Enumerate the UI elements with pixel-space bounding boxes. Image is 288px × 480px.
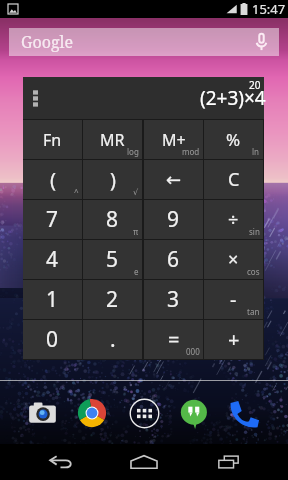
button[interactable]: ÷ bbox=[204, 200, 263, 239]
staticText: 000 bbox=[186, 346, 200, 357]
staticText: 20 bbox=[249, 78, 261, 92]
staticText: . bbox=[110, 325, 116, 354]
button[interactable]: Home bbox=[116, 444, 172, 480]
button[interactable]: Camera bbox=[21, 392, 63, 434]
staticText: MR bbox=[100, 129, 125, 151]
button[interactable]: = bbox=[144, 320, 203, 359]
button[interactable]: Phone bbox=[223, 392, 265, 434]
button[interactable]: 6 bbox=[144, 240, 203, 279]
button[interactable]: Fn bbox=[23, 120, 82, 159]
staticText: ln bbox=[252, 146, 260, 157]
staticText: 3 bbox=[167, 285, 180, 314]
button[interactable]: Hangouts bbox=[173, 392, 215, 434]
staticText: 4 bbox=[46, 245, 59, 274]
staticText: % bbox=[226, 128, 241, 151]
button[interactable]: Apps bbox=[123, 392, 165, 434]
button[interactable]: 7 bbox=[23, 200, 82, 239]
staticText: tan bbox=[247, 306, 260, 317]
button[interactable]: MR bbox=[83, 120, 142, 159]
staticText: Google bbox=[21, 31, 74, 53]
button[interactable]: . bbox=[83, 320, 142, 359]
staticText: log bbox=[127, 146, 139, 157]
button[interactable]: 9 bbox=[144, 200, 203, 239]
button[interactable]: 8 bbox=[83, 200, 142, 239]
button[interactable]: 2 bbox=[83, 280, 142, 319]
staticText: = bbox=[168, 326, 180, 353]
staticText: 5 bbox=[106, 245, 119, 274]
staticText: ) bbox=[110, 166, 116, 193]
staticText: √ bbox=[133, 188, 139, 197]
staticText: sin bbox=[249, 226, 260, 237]
button[interactable]: M+ bbox=[144, 120, 203, 159]
staticText: C bbox=[228, 167, 240, 192]
button[interactable]: ← bbox=[144, 160, 203, 199]
staticText: 1 bbox=[46, 285, 59, 314]
button[interactable]: Google bbox=[9, 28, 279, 56]
staticText: 15:47 bbox=[252, 0, 286, 18]
staticText: (2+3)×4 bbox=[200, 85, 266, 111]
staticText: ÷ bbox=[228, 207, 239, 232]
button[interactable]: 1 bbox=[23, 280, 82, 319]
staticText: mod bbox=[182, 146, 200, 157]
staticText: Fn bbox=[43, 129, 62, 151]
staticText: 9 bbox=[167, 205, 180, 234]
button[interactable]: 5 bbox=[83, 240, 142, 279]
staticText: ← bbox=[166, 169, 182, 190]
button[interactable]: × bbox=[204, 240, 263, 279]
staticText: M+ bbox=[162, 129, 186, 151]
staticText: ^ bbox=[74, 186, 79, 197]
staticText: × bbox=[228, 247, 239, 272]
staticText: ( bbox=[50, 166, 56, 193]
button[interactable]: ) bbox=[83, 160, 142, 199]
button[interactable]: % bbox=[204, 120, 263, 159]
staticText: - bbox=[230, 286, 237, 313]
staticText: 0 bbox=[46, 325, 59, 354]
button[interactable]: Back bbox=[32, 444, 88, 480]
staticText: e bbox=[134, 266, 139, 277]
staticText: 2 bbox=[106, 285, 119, 314]
staticText: cos bbox=[247, 266, 260, 277]
staticText: + bbox=[228, 326, 240, 353]
staticText: π bbox=[133, 226, 139, 237]
button[interactable]: + bbox=[204, 320, 263, 359]
button[interactable]: 0 bbox=[23, 320, 82, 359]
staticText: 8 bbox=[106, 205, 119, 234]
staticText: 7 bbox=[46, 205, 59, 234]
button[interactable]: - bbox=[204, 280, 263, 319]
button[interactable]: 4 bbox=[23, 240, 82, 279]
staticText: 6 bbox=[167, 245, 180, 274]
button[interactable]: Chrome bbox=[71, 392, 113, 434]
button[interactable]: Recents bbox=[200, 444, 256, 480]
button[interactable]: 3 bbox=[144, 280, 203, 319]
button[interactable]: ( bbox=[23, 160, 82, 199]
button[interactable]: C bbox=[204, 160, 263, 199]
button[interactable]: (2+3)×4 bbox=[23, 77, 264, 119]
